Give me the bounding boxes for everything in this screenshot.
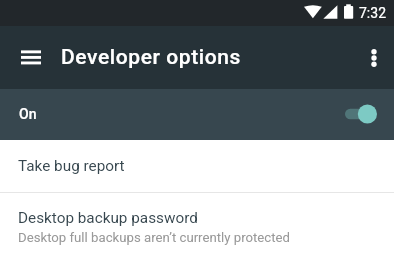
button[interactable]: Navigation menu [10,37,51,78]
staticText: Desktop backup password [18,209,198,227]
button[interactable]: Developer options toggle [345,101,377,127]
button[interactable]: Desktop backup password [0,193,394,261]
staticText: 7:32 [359,5,386,21]
button[interactable]: On [0,89,394,140]
button[interactable]: Take bug report [0,140,394,192]
button[interactable]: More options [353,37,394,78]
staticText: Take bug report [18,157,125,175]
staticText: Developer options [61,45,241,70]
staticText: On [19,106,37,122]
staticText: Desktop full backups aren’t currently pr… [18,230,290,245]
